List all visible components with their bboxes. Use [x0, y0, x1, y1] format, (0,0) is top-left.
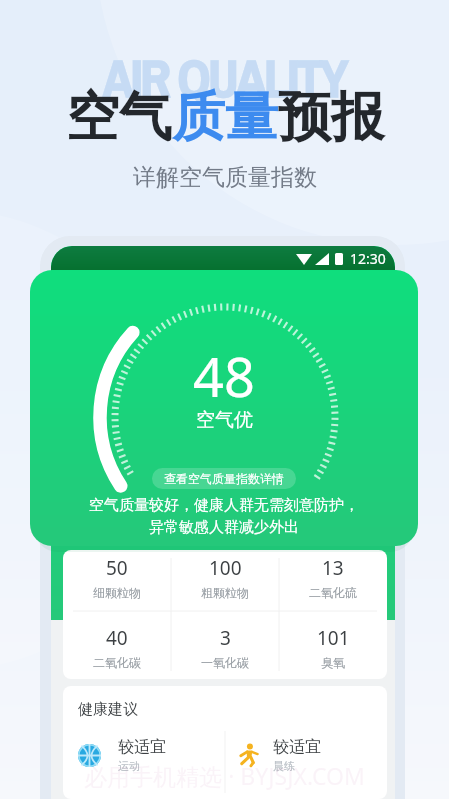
button[interactable]: 101	[279, 611, 387, 679]
staticText: 13	[322, 555, 344, 581]
staticText: 3	[220, 625, 231, 651]
staticText: 40	[106, 625, 128, 651]
staticText: 粗颗粒物	[201, 585, 249, 600]
staticText: 细颗粒物	[93, 585, 141, 600]
staticText: 48	[193, 339, 255, 413]
staticText: 质量	[172, 84, 278, 151]
button[interactable]: 3	[171, 611, 279, 679]
staticText: 查看空气质量指数详情	[164, 471, 284, 486]
staticText: 必用手机精选 · BYJSJX.COM	[0, 760, 449, 791]
staticText: 健康建议	[78, 700, 138, 719]
staticText: 二氧化硫	[309, 585, 357, 600]
staticText: 空气质量较好，健康人群无需刻意防护，	[89, 496, 359, 515]
button[interactable]: 100	[171, 550, 279, 611]
staticText: 101	[317, 625, 350, 651]
staticText: 运动	[118, 759, 140, 773]
staticText: AIR QUALITY	[0, 44, 449, 113]
staticText: 预报	[278, 84, 384, 151]
staticText: 50	[106, 555, 128, 581]
staticText: 详解空气质量指数	[133, 163, 317, 192]
staticText: 异常敏感人群减少外出	[149, 518, 299, 537]
button[interactable]: 50	[63, 550, 171, 611]
staticText: 较适宜	[118, 737, 166, 757]
button[interactable]: 查看空气质量指数详情	[152, 468, 296, 489]
staticText: 100	[209, 555, 242, 581]
staticText: 较适宜	[273, 737, 321, 757]
staticText: 12:30	[350, 249, 386, 268]
staticText: 臭氧	[321, 655, 345, 670]
button[interactable]: 较适宜	[236, 737, 387, 773]
staticText: 空气	[66, 84, 172, 151]
staticText: 空气优	[196, 408, 253, 432]
staticText: 二氧化碳	[93, 655, 141, 670]
button[interactable]: 13	[279, 550, 387, 611]
button[interactable]: 40	[63, 611, 171, 679]
button[interactable]: 较适宜	[78, 737, 232, 773]
staticText: 晨练	[273, 759, 295, 773]
staticText: 一氧化碳	[201, 655, 249, 670]
